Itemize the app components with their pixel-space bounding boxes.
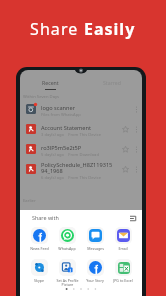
button[interactable]: Account Statement	[20, 119, 142, 139]
button[interactable]: Sort options	[128, 213, 138, 223]
button[interactable]: Recent	[20, 79, 81, 92]
staticText: JPG to Excel	[113, 278, 133, 283]
button[interactable]: Star	[120, 164, 131, 175]
staticText: News Feed	[30, 246, 49, 251]
staticText: Easily	[84, 18, 136, 40]
staticText: logo scanner	[41, 104, 75, 112]
staticText: Messages	[87, 246, 104, 251]
button[interactable]: JPG to Excel	[109, 259, 137, 283]
staticText: Recent	[42, 79, 59, 86]
button[interactable]: logo scanner	[20, 99, 142, 119]
button[interactable]: ro3lP5m5e2t5P	[20, 139, 142, 159]
button[interactable]: Skype	[25, 259, 53, 283]
staticText: 6 day(s) ago From This Device	[41, 175, 101, 181]
button[interactable]: More options	[131, 144, 142, 155]
button[interactable]: Messages	[81, 227, 109, 251]
staticText: Share	[30, 18, 84, 40]
button[interactable]: Star	[120, 144, 131, 155]
button[interactable]: Set As Profile Picture	[53, 259, 81, 287]
staticText: 3 day(s) ago From This Device	[41, 132, 101, 138]
staticText: WhatsApp	[58, 246, 76, 251]
staticText: Skype	[34, 278, 44, 283]
staticText: Set As Profile Picture	[56, 278, 79, 287]
staticText: Earlier	[23, 198, 36, 204]
staticText: Account Statement	[41, 124, 91, 132]
button[interactable]: News Feed	[25, 227, 53, 251]
staticText: Starred	[103, 79, 121, 86]
staticText: PolicySchedule_H8Z119315 94_1968	[41, 161, 113, 175]
staticText: ro3lP5m5e2t5P	[41, 144, 82, 152]
button[interactable]: Email	[109, 227, 137, 251]
staticText: Your Story	[86, 278, 104, 283]
button[interactable]: WhatsApp	[53, 227, 81, 251]
staticText: Files from WhatsApp	[41, 112, 81, 118]
button[interactable]: Your Story	[81, 259, 109, 283]
button[interactable]: PolicySchedule_H8Z119315 94_1968	[20, 159, 142, 179]
staticText: Email	[118, 246, 128, 251]
button[interactable]: More options	[131, 104, 142, 115]
button[interactable]: More options	[131, 124, 142, 135]
button[interactable]: Star	[120, 124, 131, 135]
staticText: Within Seven Days	[23, 94, 60, 100]
staticText: 5 day(s) ago From Download	[41, 152, 99, 158]
staticText: Share with	[32, 214, 59, 221]
button[interactable]: More options	[131, 164, 142, 175]
